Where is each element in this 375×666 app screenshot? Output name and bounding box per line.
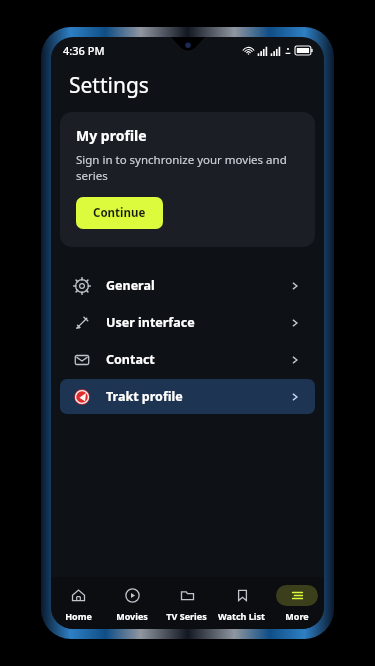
button[interactable]: User interface [60,305,315,340]
staticText: TV Series [166,610,207,622]
staticText: My profile [76,126,147,145]
button[interactable]: Home [51,577,105,629]
button[interactable]: Contact [60,342,315,377]
staticText: Watch List [218,610,265,622]
button[interactable]: More [269,577,324,629]
staticText: Movies [116,610,148,622]
button[interactable]: Trakt profile [60,379,315,414]
staticText: Trakt profile [106,388,289,405]
staticText: Settings [69,71,149,100]
button[interactable]: Movies [105,577,159,629]
staticText: More [285,610,309,622]
staticText: Contact [106,351,289,368]
staticText: Sign in to synchronize your movies and s… [76,152,299,184]
button[interactable]: TV Series [159,577,214,629]
button[interactable]: Continue [76,197,163,229]
staticText: Continue [93,205,146,221]
button[interactable]: General [60,268,315,303]
staticText: 4:36 PM [63,43,105,58]
button[interactable]: Watch List [214,577,269,629]
staticText: User interface [106,314,289,331]
staticText: General [106,277,289,294]
staticText: Home [65,610,92,622]
